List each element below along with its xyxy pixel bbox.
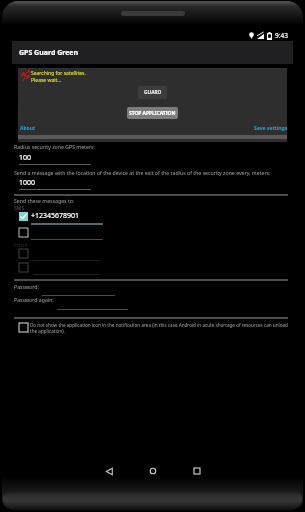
staticText: Radius security zone GPS meters: xyxy=(14,143,95,150)
button[interactable]: Back xyxy=(95,457,123,485)
staticText: 100 xyxy=(19,153,32,163)
staticText: Email xyxy=(14,241,28,248)
staticText: Please wait... xyxy=(31,77,62,84)
button[interactable] xyxy=(19,249,28,258)
staticText: 9:43 xyxy=(275,31,288,40)
staticText: GPS Guard Green xyxy=(19,48,79,58)
staticText: Send a message with the location of the … xyxy=(14,169,290,176)
staticText: Searching for satellites. xyxy=(31,70,86,77)
button[interactable]: STOP APPLICATION xyxy=(127,107,178,119)
staticText: Send these messages to: xyxy=(14,197,75,204)
button[interactable]: Recents xyxy=(183,457,211,485)
button[interactable]: About xyxy=(20,125,36,132)
staticText: Do not show the application icon in the … xyxy=(30,322,291,334)
staticText: GUARD xyxy=(144,89,162,96)
button[interactable] xyxy=(19,228,28,237)
staticText: +12345678901 xyxy=(31,211,80,221)
button[interactable] xyxy=(19,263,28,272)
staticText: SMS xyxy=(14,204,25,211)
staticText: Password again: xyxy=(14,296,54,303)
staticText: 1000 xyxy=(19,178,36,188)
button[interactable] xyxy=(19,212,28,221)
staticText: Password: xyxy=(14,283,39,290)
button[interactable]: GUARD xyxy=(138,86,167,99)
staticText: STOP APPLICATION xyxy=(129,110,176,117)
button[interactable]: Save settings xyxy=(254,125,288,132)
button[interactable]: Do not show the application icon in the … xyxy=(19,322,291,334)
button[interactable]: Home xyxy=(139,457,167,485)
